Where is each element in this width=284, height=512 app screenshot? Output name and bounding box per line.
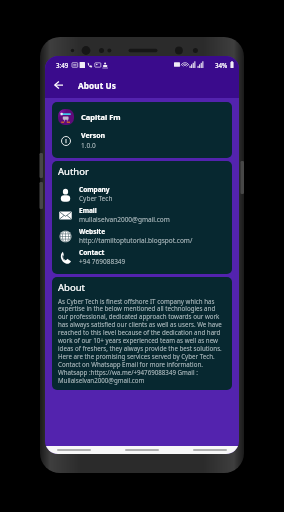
staticText: Capital Fm (81, 112, 121, 122)
staticText: Author (58, 165, 89, 178)
staticText: Cyber Tech (79, 194, 113, 203)
staticText: As Cyber Tech is finest offshore IT comp… (58, 297, 226, 385)
staticText: 3:49 (56, 61, 69, 69)
staticText: 34% (215, 61, 228, 69)
staticText: 1.0.0 (81, 141, 96, 150)
button[interactable]: Website (58, 225, 226, 246)
staticText: mullaiselvan2000@gmail.com (79, 215, 170, 224)
staticText: Email (79, 206, 97, 215)
staticText: Website (79, 227, 106, 236)
button[interactable]: Back (51, 72, 65, 98)
staticText: Company (79, 185, 110, 194)
staticText: Contact (79, 248, 105, 257)
staticText: Verson (81, 131, 106, 141)
staticText: About (58, 281, 85, 294)
staticText: http://tamiltoptutorial.blogspot.com/ (79, 236, 193, 245)
staticText: About Us (78, 80, 117, 91)
button[interactable]: Company (58, 183, 226, 204)
button[interactable]: Email (58, 204, 226, 225)
button[interactable]: Contact (58, 246, 226, 267)
staticText: +94 769088349 (79, 257, 126, 266)
